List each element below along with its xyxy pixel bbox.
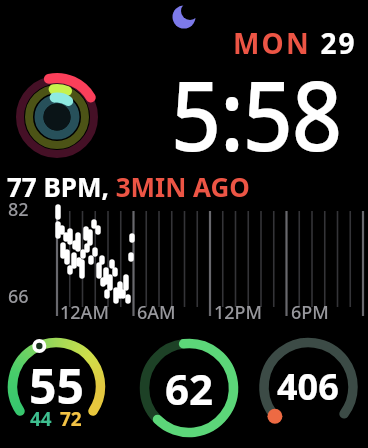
staticText: 72	[60, 406, 82, 432]
staticText: 5:58	[171, 48, 341, 179]
button[interactable]: 77 BPM, 3MIN AGO	[7, 169, 250, 204]
staticText: 406	[277, 362, 339, 411]
button[interactable]	[253, 332, 364, 443]
staticText: 77 BPM, 3MIN AGO	[7, 169, 250, 204]
staticText: 6AM	[137, 300, 176, 325]
staticText: MON 29	[233, 24, 357, 62]
staticText: 55	[29, 353, 84, 418]
staticText: 12PM	[214, 300, 263, 325]
staticText: 62	[165, 360, 214, 417]
staticText: 12AM	[60, 300, 109, 325]
staticText: 82	[8, 197, 29, 222]
staticText: 44	[30, 406, 52, 432]
button[interactable]	[0, 330, 113, 440]
button[interactable]	[133, 332, 245, 444]
staticText: 6PM	[291, 300, 329, 325]
staticText: 66	[8, 284, 29, 309]
button[interactable]	[9, 69, 105, 165]
